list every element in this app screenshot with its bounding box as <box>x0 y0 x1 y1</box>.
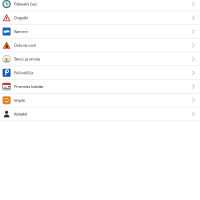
button[interactable]: Potovalni časi <box>0 0 200 11</box>
button[interactable]: Prometni koledar <box>0 80 200 94</box>
staticText: Dogodki <box>14 15 28 20</box>
staticText: Vinjete <box>14 98 25 103</box>
staticText: Števci prometa <box>14 56 40 62</box>
button[interactable]: Dela na cesti <box>0 39 200 53</box>
button[interactable]: Števci prometa <box>0 53 200 66</box>
button[interactable]: Kontakti <box>0 108 200 121</box>
staticText: Potovalni časi <box>14 1 37 7</box>
staticText: Prometni koledar <box>14 84 44 89</box>
button[interactable]: Kamere <box>0 25 200 39</box>
staticText: Kamere <box>14 29 28 34</box>
staticText: Dela na cesti <box>14 43 36 48</box>
staticText: Počivališča <box>14 70 33 75</box>
button[interactable]: Počivališča <box>0 66 200 80</box>
button[interactable]: Dogodki <box>0 11 200 25</box>
staticText: Kontakti <box>14 111 27 117</box>
button[interactable]: Vinjete <box>0 94 200 108</box>
